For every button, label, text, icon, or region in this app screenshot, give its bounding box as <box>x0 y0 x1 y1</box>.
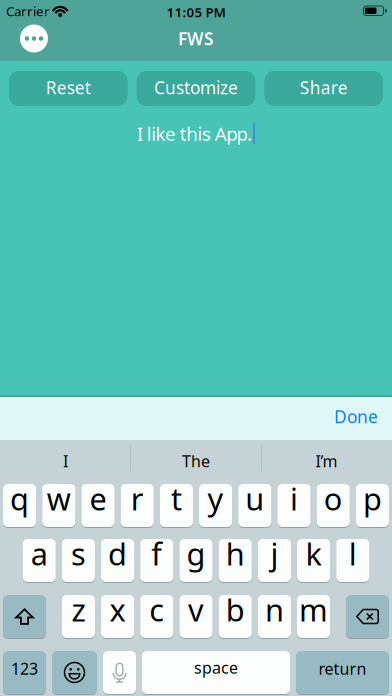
staticText: z <box>71 589 85 630</box>
button[interactable]: v <box>179 595 213 638</box>
button[interactable]: i <box>277 484 311 527</box>
staticText: e <box>89 478 106 519</box>
button[interactable]: Space <box>142 651 290 694</box>
button[interactable]: w <box>42 484 75 527</box>
staticText: u <box>245 478 264 519</box>
staticText: Customize <box>154 76 238 99</box>
button[interactable]: o <box>317 484 350 527</box>
staticText: I like this App. <box>137 121 252 146</box>
button[interactable]: c <box>140 595 173 638</box>
staticText: Carrier <box>6 2 50 20</box>
button[interactable]: z <box>62 595 95 638</box>
staticText: y <box>208 478 224 519</box>
button[interactable]: y <box>199 484 232 527</box>
staticText: return <box>318 658 366 679</box>
staticText: d <box>108 533 127 574</box>
button[interactable]: Done <box>334 407 378 430</box>
staticText: v <box>188 589 204 630</box>
button[interactable]: Customize <box>137 71 255 106</box>
staticText: l <box>349 533 357 574</box>
staticText: Reset <box>46 76 91 99</box>
staticText: space <box>194 657 238 678</box>
button[interactable]: e <box>81 484 115 527</box>
staticText: FWS <box>178 27 214 50</box>
button[interactable]: Reset <box>9 71 128 106</box>
button[interactable]: t <box>160 484 193 527</box>
staticText: a <box>31 533 48 574</box>
button[interactable]: x <box>101 595 134 638</box>
staticText: Done <box>334 405 378 428</box>
staticText: f <box>151 533 162 574</box>
staticText: k <box>306 533 322 574</box>
staticText: I <box>63 450 68 472</box>
button[interactable]: More <box>20 24 48 52</box>
button[interactable]: Dictate <box>103 651 136 694</box>
staticText: m <box>299 589 328 630</box>
staticText: w <box>47 478 71 519</box>
button[interactable]: g <box>179 539 213 582</box>
staticText: i <box>290 478 298 519</box>
staticText: g <box>186 533 205 574</box>
button[interactable]: b <box>219 595 252 638</box>
staticText: h <box>226 533 245 574</box>
button[interactable]: q <box>3 484 36 527</box>
button[interactable]: s <box>62 539 95 582</box>
button[interactable]: u <box>238 484 271 527</box>
button[interactable]: I’m <box>261 440 391 478</box>
staticText: Share <box>300 76 348 99</box>
button[interactable]: Return <box>296 651 389 694</box>
button[interactable]: k <box>297 539 330 582</box>
button[interactable]: h <box>219 539 252 582</box>
button[interactable]: j <box>258 539 291 582</box>
button[interactable]: The <box>130 440 261 478</box>
staticText: c <box>149 589 164 630</box>
staticText: x <box>110 589 126 630</box>
button[interactable]: r <box>121 484 154 527</box>
staticText: b <box>226 589 245 630</box>
button[interactable]: I <box>0 440 130 478</box>
button[interactable]: a <box>23 539 56 582</box>
staticText: q <box>10 478 29 519</box>
button[interactable]: Emoji <box>52 651 97 694</box>
staticText: j <box>270 533 278 574</box>
staticText: I’m <box>315 450 337 472</box>
staticText: The <box>182 450 210 472</box>
staticText: o <box>324 478 343 519</box>
button[interactable]: Shift <box>3 595 46 638</box>
staticText: r <box>131 478 144 519</box>
button[interactable]: f <box>140 539 173 582</box>
staticText: n <box>265 589 284 630</box>
staticText: 123 <box>11 658 38 679</box>
staticText: s <box>71 533 86 574</box>
button[interactable]: m <box>297 595 330 638</box>
button[interactable]: p <box>356 484 389 527</box>
button[interactable]: l <box>336 539 369 582</box>
button[interactable]: Delete <box>346 595 389 638</box>
button[interactable]: d <box>101 539 134 582</box>
staticText: p <box>363 478 382 519</box>
staticText: t <box>171 478 182 519</box>
button[interactable]: n <box>258 595 291 638</box>
button[interactable]: Numbers <box>3 651 46 694</box>
staticText: 11:05 PM <box>166 3 225 21</box>
button[interactable]: Share <box>264 71 383 106</box>
